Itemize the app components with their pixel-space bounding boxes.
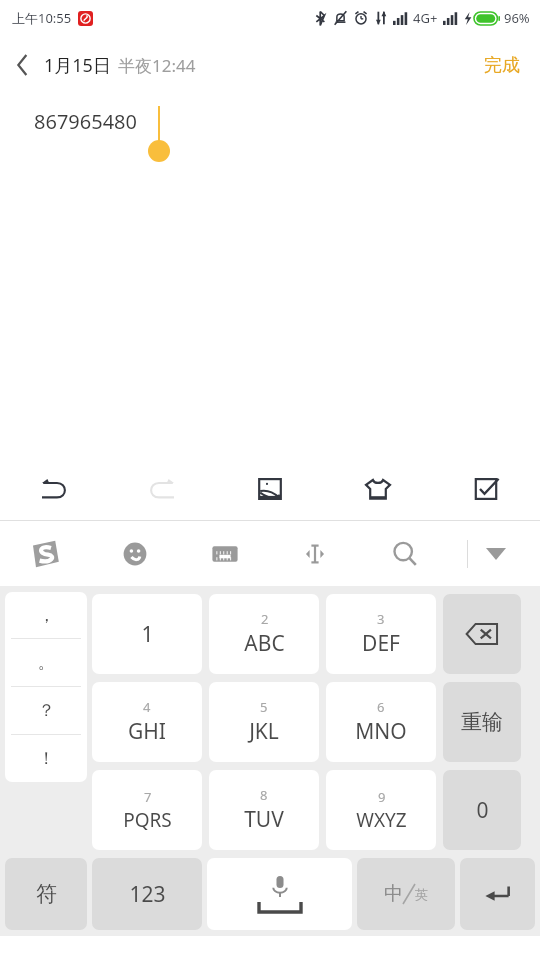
button[interactable]: Move cursor — [270, 521, 360, 586]
staticText: 9 — [378, 788, 386, 806]
button[interactable]: Search — [360, 521, 450, 586]
button[interactable]: Redo — [108, 458, 216, 520]
staticText: ， — [38, 605, 55, 626]
staticText: 半夜12:44 — [118, 54, 196, 77]
button[interactable]: Back — [0, 43, 44, 87]
button[interactable]: Undo — [0, 458, 108, 520]
staticText: ！ — [38, 748, 55, 769]
staticText: ？ — [38, 700, 55, 721]
button[interactable]: 符 — [5, 858, 87, 930]
staticText: 96% — [504, 9, 530, 27]
button[interactable]: 重输 — [443, 682, 521, 762]
button[interactable]: 4 — [92, 682, 202, 762]
staticText: 4 — [143, 698, 151, 716]
staticText: DEF — [362, 629, 400, 658]
button[interactable]: 3 — [326, 594, 436, 674]
button[interactable]: Sogou input — [0, 521, 90, 586]
staticText: 。 — [38, 652, 55, 673]
button[interactable]: 8 — [209, 770, 319, 850]
staticText: 7 — [144, 788, 152, 806]
staticText: 重输 — [461, 709, 503, 735]
staticText: 123 — [129, 880, 166, 909]
staticText: 5 — [260, 698, 268, 716]
staticText: PQRS — [123, 807, 172, 833]
staticText: WXYZ — [356, 807, 407, 833]
button[interactable]: Checklist — [432, 458, 540, 520]
staticText: 6 — [377, 698, 385, 716]
button[interactable]: Chinese / English — [357, 858, 455, 930]
staticText: 符 — [36, 881, 57, 907]
button[interactable]: 6 — [326, 682, 436, 762]
staticText: ABC — [244, 629, 285, 658]
staticText: 上午10:55 — [12, 9, 72, 27]
staticText: 4G+ — [413, 9, 438, 27]
button[interactable]: Keyboard layout — [180, 521, 270, 586]
button[interactable]: 123 — [92, 858, 202, 930]
staticText: 完成 — [484, 54, 520, 77]
button[interactable]: 9 — [326, 770, 436, 850]
staticText: 0 — [476, 796, 489, 825]
button[interactable]: 0 — [443, 770, 521, 850]
button[interactable]: Enter — [460, 858, 535, 930]
button[interactable]: Emoji — [90, 521, 180, 586]
staticText: 867965480 — [34, 108, 137, 135]
staticText: JKL — [249, 717, 279, 746]
button[interactable]: Backspace — [443, 594, 521, 674]
button[interactable]: ， — [5, 592, 87, 782]
button[interactable]: Style — [324, 458, 432, 520]
button[interactable]: Insert image — [216, 458, 324, 520]
staticText: GHI — [128, 717, 166, 746]
staticText: 中 — [384, 882, 403, 906]
staticText: TUV — [244, 805, 284, 834]
button[interactable]: 1 — [92, 594, 202, 674]
button[interactable]: 7 — [92, 770, 202, 850]
staticText: MNO — [355, 717, 407, 746]
button[interactable]: 完成 — [478, 48, 526, 83]
button[interactable]: 2 — [209, 594, 319, 674]
staticText: 英 — [415, 886, 428, 902]
button[interactable]: 5 — [209, 682, 319, 762]
staticText: 3 — [377, 610, 385, 628]
staticText: 1 — [141, 620, 154, 649]
button[interactable]: Voice input / space — [207, 858, 352, 930]
staticText: 1月15日 — [44, 53, 111, 78]
staticText: 8 — [260, 786, 268, 804]
button[interactable]: Hide keyboard — [468, 521, 524, 586]
staticText: 2 — [261, 610, 269, 628]
